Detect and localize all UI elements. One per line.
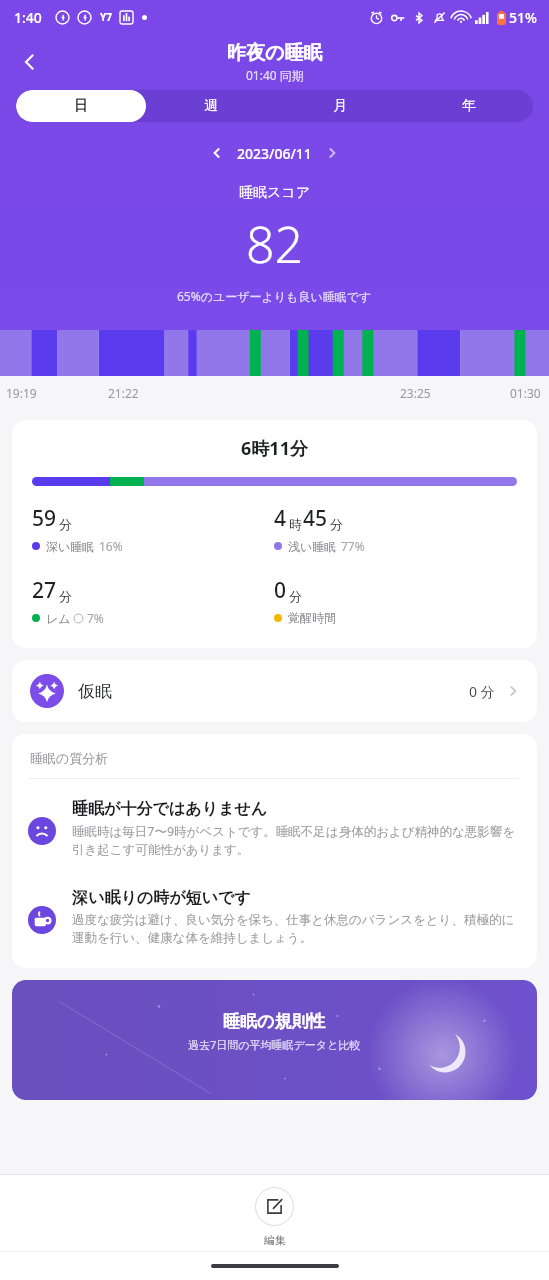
staticText: 分 xyxy=(59,516,72,532)
staticText: 覚醒時間 xyxy=(288,610,336,625)
button[interactable]: 睡眠の規則性 xyxy=(12,980,537,1100)
staticText: 睡眠が十分ではありません xyxy=(72,799,267,819)
staticText: 過去7日間の平均睡眠データと比較 xyxy=(188,1037,361,1052)
button[interactable]: Previous day xyxy=(203,139,231,167)
staticText: 昨夜の睡眠 xyxy=(227,41,323,65)
button[interactable]: Back xyxy=(8,40,52,84)
staticText: 深い睡眠 xyxy=(46,539,95,554)
staticText: レム xyxy=(46,611,71,626)
staticText: 6時11分 xyxy=(12,436,537,461)
staticText: 51% xyxy=(509,8,537,27)
staticText: 月 xyxy=(333,97,347,115)
staticText: 仮眠 xyxy=(78,681,112,702)
staticText: 1:40 xyxy=(14,8,42,27)
staticText: 深い眠りの時が短いです xyxy=(72,888,251,908)
staticText: 分 xyxy=(59,588,72,604)
staticText: 27 xyxy=(32,576,57,605)
staticText: 77% xyxy=(341,538,365,554)
staticText: 19:19 xyxy=(6,385,37,401)
staticText: 59 xyxy=(32,504,57,533)
staticText: Y7 xyxy=(100,10,112,24)
staticText: 日 xyxy=(74,97,88,115)
staticText: 分 xyxy=(330,516,343,532)
button[interactable]: 月 xyxy=(275,90,404,122)
staticText: 睡眠スコア xyxy=(239,184,310,202)
staticText: 0 分 xyxy=(469,682,495,701)
staticText: 01:40 同期 xyxy=(246,67,304,83)
staticText: 睡眠の規則性 xyxy=(223,1011,326,1032)
staticText: 01:30 xyxy=(510,385,541,401)
staticText: 82 xyxy=(246,210,304,278)
button[interactable]: 日 xyxy=(16,90,146,122)
staticText: 16% xyxy=(99,538,123,554)
staticText: 65%のユーザーよりも良い睡眠です xyxy=(177,288,372,304)
button[interactable]: 仮眠 xyxy=(12,660,537,722)
staticText: 45 xyxy=(303,504,328,533)
button[interactable]: Next day xyxy=(318,139,346,167)
staticText: 年 xyxy=(462,97,476,115)
staticText: 睡眠時は毎日7〜9時がベストです。睡眠不足は身体的および精神的な悪影響を引き起こ… xyxy=(72,823,519,858)
staticText: 時 xyxy=(289,516,302,532)
button[interactable]: 年 xyxy=(404,90,533,122)
staticText: 23:25 xyxy=(400,385,431,401)
staticText: 7% xyxy=(87,610,104,626)
staticText: 分 xyxy=(289,588,302,604)
button[interactable]: 編集 xyxy=(0,1175,549,1251)
staticText: 週 xyxy=(204,97,218,115)
staticText: 睡眠の質分析 xyxy=(30,750,109,766)
staticText: 21:22 xyxy=(108,385,139,401)
button[interactable]: 週 xyxy=(146,90,275,122)
staticText: 編集 xyxy=(264,1233,286,1247)
staticText: 浅い睡眠 xyxy=(288,539,337,554)
staticText: 0 xyxy=(274,576,287,605)
staticText: 4 xyxy=(274,504,287,533)
staticText: 2023/06/11 xyxy=(237,144,312,163)
staticText: 過度な疲労は避け、良い気分を保ち、仕事と休息のバランスをとり、積極的に運動を行い… xyxy=(72,912,519,946)
